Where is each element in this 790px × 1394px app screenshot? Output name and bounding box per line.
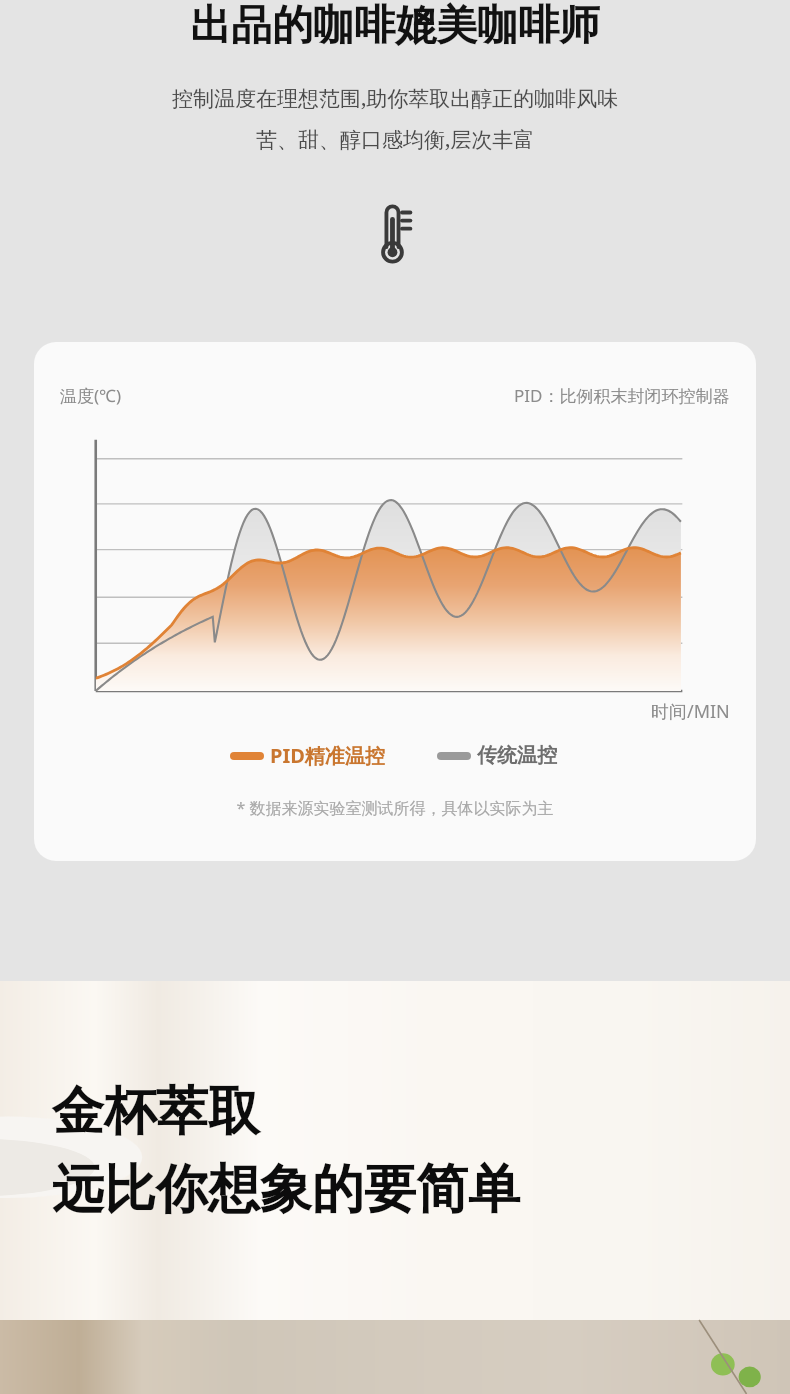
staticText: 温度(℃) [60, 384, 122, 407]
staticText: 金杯萃取 [52, 1079, 260, 1145]
staticText: PID：比例积末封闭环控制器 [514, 384, 730, 407]
staticText: 苦、甜、醇口感均衡,层次丰富 [0, 125, 790, 154]
button[interactable]: 温度(℃) [34, 342, 756, 861]
button[interactable]: PID精准温控 [234, 742, 385, 769]
staticText: 远比你想象的要简单 [52, 1157, 520, 1223]
staticText: PID精准温控 [270, 742, 385, 769]
button[interactable]: 传统温控 [441, 743, 557, 768]
staticText: * 数据来源实验室测试所得，具体以实际为主 [34, 797, 756, 819]
staticText: 出品的咖啡媲美咖啡师 [190, 0, 600, 48]
other: Temperature [374, 202, 416, 264]
staticText: 时间/MIN [651, 699, 730, 724]
staticText: 传统温控 [477, 743, 557, 768]
staticText: 控制温度在理想范围,助你萃取出醇正的咖啡风味 [0, 84, 790, 113]
